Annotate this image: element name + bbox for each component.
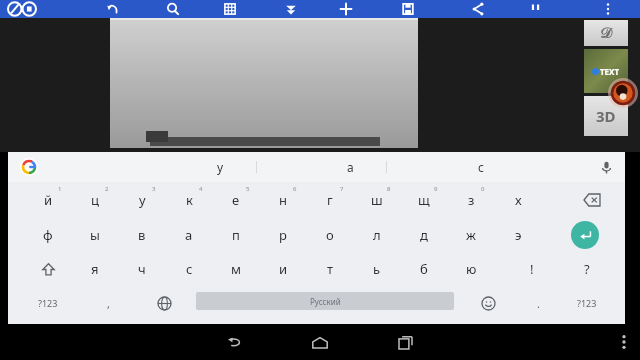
button[interactable]: Style 3D xyxy=(584,96,628,136)
button[interactable]: я xyxy=(73,252,117,286)
button[interactable]: ч xyxy=(120,252,164,286)
button[interactable]: Style 𝒟 xyxy=(584,20,628,46)
button[interactable]: Grid xyxy=(222,1,238,17)
button[interactable]: э xyxy=(496,218,540,252)
staticText: 3 xyxy=(152,185,156,193)
staticText: р xyxy=(279,226,287,244)
button[interactable]: у xyxy=(190,152,250,182)
button[interactable]: Quote xyxy=(528,1,544,17)
button[interactable]: а xyxy=(320,152,380,182)
button[interactable]: н xyxy=(261,182,305,218)
button[interactable]: Home xyxy=(300,324,340,360)
staticText: з xyxy=(468,191,475,209)
button[interactable]: ы xyxy=(73,218,117,252)
button[interactable]: щ xyxy=(402,182,446,218)
button[interactable]: х xyxy=(496,182,540,218)
button[interactable]: More xyxy=(600,1,616,17)
button[interactable]: ю xyxy=(449,252,493,286)
staticText: у xyxy=(217,159,224,175)
button[interactable]: с xyxy=(451,152,511,182)
button[interactable]: Voice input xyxy=(597,158,615,176)
button[interactable]: с xyxy=(167,252,211,286)
staticText: 7 xyxy=(340,185,344,193)
staticText: ю xyxy=(466,260,477,278)
staticText: м xyxy=(231,260,241,278)
button[interactable]: ф xyxy=(26,218,70,252)
staticText: ч xyxy=(138,260,146,278)
button[interactable]: ш xyxy=(355,182,399,218)
staticText: 5 xyxy=(246,185,250,193)
button[interactable]: Undo xyxy=(105,1,121,17)
button[interactable]: е xyxy=(214,182,258,218)
button[interactable]: More options xyxy=(614,332,634,352)
staticText: г xyxy=(327,191,333,209)
button[interactable]: Back xyxy=(215,324,255,360)
staticText: д xyxy=(420,226,428,244)
button[interactable]: а xyxy=(167,218,211,252)
staticText: ! xyxy=(530,260,534,278)
button[interactable]: Emoji xyxy=(470,286,506,320)
button[interactable]: з xyxy=(449,182,493,218)
staticText: й xyxy=(44,191,53,209)
staticText: , xyxy=(107,296,110,311)
staticText: 𝒟 xyxy=(600,26,612,41)
button[interactable]: у xyxy=(120,182,164,218)
staticText: к xyxy=(186,191,193,209)
staticText: н xyxy=(279,191,287,209)
staticText: ? xyxy=(584,260,590,278)
button[interactable]: Google xyxy=(20,158,38,176)
button[interactable]: Save xyxy=(400,1,416,17)
button[interactable]: о xyxy=(308,218,352,252)
button[interactable]: ?123 xyxy=(564,286,610,320)
button[interactable]: к xyxy=(167,182,211,218)
button[interactable]: Shift xyxy=(26,252,70,286)
button[interactable]: Recent apps xyxy=(385,324,425,360)
button[interactable]: Русский xyxy=(196,292,454,310)
button[interactable]: Change language xyxy=(146,286,182,320)
button[interactable]: Download xyxy=(283,1,299,17)
button[interactable]: ! xyxy=(508,252,556,286)
button[interactable]: п xyxy=(214,218,258,252)
staticText: TEXT xyxy=(600,66,620,77)
button[interactable]: г xyxy=(308,182,352,218)
button[interactable]: Share xyxy=(470,1,486,17)
staticText: и xyxy=(279,260,288,278)
staticText: ц xyxy=(91,191,99,209)
button[interactable]: Text style xyxy=(584,49,628,93)
button[interactable]: и xyxy=(261,252,305,286)
staticText: у xyxy=(139,191,146,209)
staticText: е xyxy=(232,191,240,209)
staticText: х xyxy=(515,191,522,209)
button[interactable]: ц xyxy=(73,182,117,218)
staticText: ?123 xyxy=(577,297,597,309)
button[interactable]: л xyxy=(355,218,399,252)
button[interactable]: . xyxy=(520,286,556,320)
button[interactable]: ь xyxy=(355,252,399,286)
button[interactable]: Backspace xyxy=(568,182,616,218)
button[interactable]: м xyxy=(214,252,258,286)
button[interactable]: б xyxy=(402,252,446,286)
button[interactable]: Add xyxy=(338,1,354,17)
button[interactable]: ?123 xyxy=(26,286,70,320)
staticText: б xyxy=(420,260,428,278)
staticText: о xyxy=(326,226,334,244)
button[interactable]: ? xyxy=(563,252,611,286)
button[interactable]: Project settings xyxy=(6,1,38,17)
staticText: 3D xyxy=(596,106,616,126)
staticText: щ xyxy=(418,191,430,209)
button[interactable]: р xyxy=(261,218,305,252)
staticText: в xyxy=(138,226,146,244)
button[interactable]: т xyxy=(308,252,352,286)
button[interactable]: й xyxy=(26,182,70,218)
staticText: ы xyxy=(90,226,100,244)
button[interactable]: Enter xyxy=(571,221,599,249)
button[interactable]: Search xyxy=(165,1,181,17)
staticText: с xyxy=(186,260,193,278)
staticText: а xyxy=(347,159,354,175)
button[interactable]: д xyxy=(402,218,446,252)
button[interactable]: в xyxy=(120,218,164,252)
staticText: 0 xyxy=(481,185,485,193)
button[interactable]: ж xyxy=(449,218,493,252)
staticText: я xyxy=(91,260,99,278)
button[interactable]: , xyxy=(88,286,128,320)
